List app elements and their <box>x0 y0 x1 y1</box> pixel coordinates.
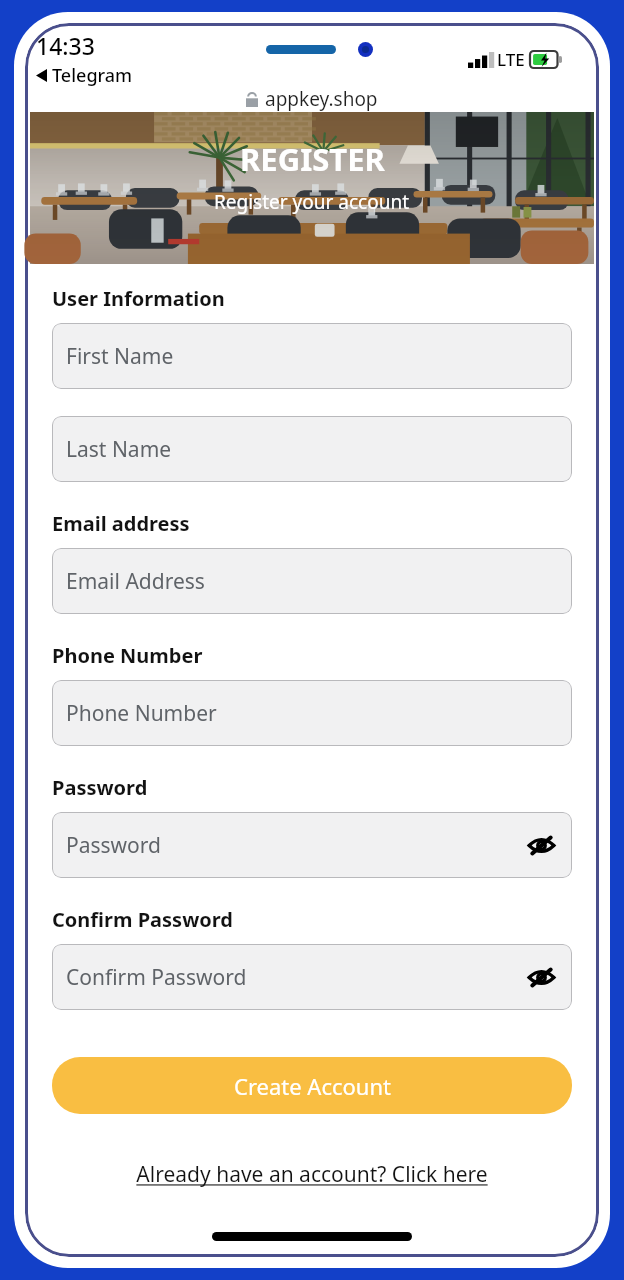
staticText: Register your account <box>214 189 410 215</box>
button[interactable]: Email Address <box>52 548 572 614</box>
button[interactable]: Already have an account? Click here <box>52 1160 572 1189</box>
staticText: Last Name <box>66 435 172 464</box>
staticText: First Name <box>66 342 174 371</box>
staticText: Password <box>66 831 161 860</box>
staticText: Telegram <box>52 63 133 88</box>
staticText: Confirm Password <box>52 906 233 933</box>
staticText: Create Account <box>234 1071 391 1101</box>
staticText: Already have an account? Click here <box>136 1160 488 1189</box>
staticText: appkey.shop <box>265 86 378 112</box>
staticText: Email address <box>52 510 190 537</box>
staticText: REGISTER <box>240 138 385 180</box>
staticText: User Information <box>52 285 225 312</box>
button[interactable]: Password <box>52 812 572 878</box>
staticText: Password <box>52 774 148 801</box>
staticText: Email Address <box>66 567 205 596</box>
button[interactable]: Create Account <box>52 1057 572 1114</box>
staticText: Phone Number <box>52 642 203 669</box>
button[interactable]: Last Name <box>52 416 572 482</box>
button[interactable]: Show password <box>524 960 558 994</box>
staticText: 14:33 <box>36 30 95 61</box>
staticText: Phone Number <box>66 699 217 728</box>
button[interactable]: Phone Number <box>52 680 572 746</box>
button[interactable]: Show password <box>524 828 558 862</box>
staticText: Confirm Password <box>66 963 247 992</box>
staticText: LTE <box>497 48 525 71</box>
button[interactable]: First Name <box>52 323 572 389</box>
button[interactable]: Confirm Password <box>52 944 572 1010</box>
